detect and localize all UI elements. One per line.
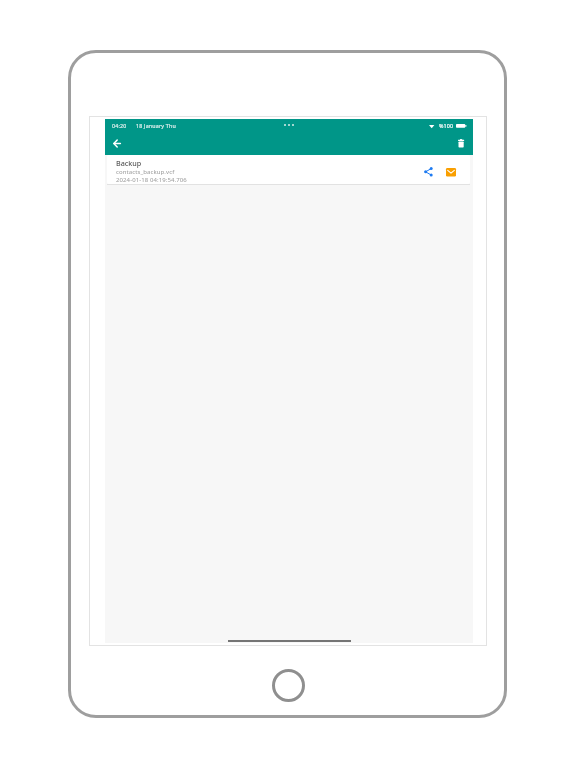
staticText: %100 bbox=[439, 122, 454, 129]
button[interactable] bbox=[272, 669, 305, 702]
staticText: 2024-01-18 04:19:54.706 bbox=[116, 176, 187, 184]
staticText: 18 January Thu bbox=[136, 122, 176, 129]
button[interactable]: Backup bbox=[107, 155, 470, 184]
staticText: 04:20 bbox=[112, 122, 127, 129]
staticText: contacts_backup.vcf bbox=[116, 168, 175, 176]
staticText: Backup bbox=[116, 158, 142, 168]
button[interactable] bbox=[454, 136, 468, 150]
button[interactable] bbox=[446, 168, 456, 176]
button[interactable] bbox=[109, 135, 125, 151]
button[interactable] bbox=[424, 167, 433, 176]
